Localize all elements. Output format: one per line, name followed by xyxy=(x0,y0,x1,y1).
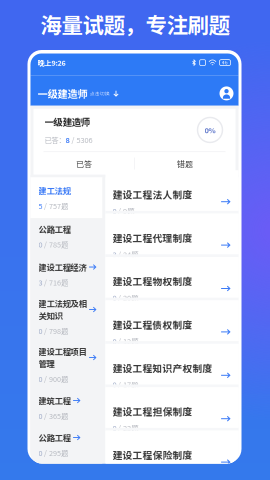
staticText: 0 xyxy=(38,326,42,336)
button[interactable]: 错题 xyxy=(135,152,235,175)
staticText: 建设工程债权制度 xyxy=(112,317,192,331)
staticText: 已答： xyxy=(44,134,65,145)
staticText: 建设工程代理制度 xyxy=(112,231,192,245)
button[interactable]: 建设工程项目 管理 xyxy=(30,339,102,390)
staticText: / 20题 xyxy=(118,292,138,303)
staticText: / 17题 xyxy=(118,379,138,390)
staticText: 建设工程担保制度 xyxy=(112,404,192,418)
staticText: 建设工程经济 xyxy=(38,261,86,273)
staticText: 46 xyxy=(222,59,228,66)
staticText: 3 xyxy=(38,277,42,287)
button[interactable]: 账户 xyxy=(219,86,233,100)
staticText: 0 xyxy=(112,379,116,390)
staticText: 公路工程 xyxy=(38,223,70,235)
staticText: 0 xyxy=(112,292,116,303)
staticText: 晚上9:26 xyxy=(37,57,65,68)
button[interactable]: 建设工程知识产权制度 xyxy=(105,344,238,384)
staticText: 海量试题，专注刷题 xyxy=(40,8,229,40)
staticText: / 23题 xyxy=(118,422,138,433)
staticText: 0 xyxy=(112,335,116,346)
button[interactable]: 建设工程代理制度 xyxy=(105,214,238,254)
button[interactable]: 建工法规及相 关知识 xyxy=(30,294,102,339)
button[interactable]: 建设工程法人制度 xyxy=(105,170,238,211)
staticText: 5 xyxy=(38,201,42,211)
staticText: 错题 xyxy=(177,158,193,169)
staticText: 0 xyxy=(38,411,42,421)
staticText: / 295题 xyxy=(44,448,68,458)
staticText: 0 xyxy=(112,205,116,216)
button[interactable]: 公路工程 xyxy=(30,425,102,464)
staticText: / 24题 xyxy=(118,249,138,259)
staticText: 0 xyxy=(38,374,42,384)
staticText: 建设工程知识产权制度 xyxy=(112,361,212,375)
staticText: / 5306 xyxy=(69,134,92,145)
staticText: 0 xyxy=(38,239,42,249)
button[interactable]: 建设工程保险制度 xyxy=(105,431,238,471)
staticText: 已答 xyxy=(76,158,92,169)
button[interactable]: 建设工程担保制度 xyxy=(105,387,238,428)
button[interactable]: 建工法规 xyxy=(30,177,102,218)
staticText: / 716题 xyxy=(44,277,68,287)
staticText: 3 xyxy=(112,249,116,259)
staticText: 建筑工程 xyxy=(38,394,70,407)
staticText: / 12题 xyxy=(118,335,138,346)
staticText: 0 xyxy=(112,422,116,433)
staticText: 一级建造师 xyxy=(37,86,87,101)
button[interactable]: 建设工程债权制度 xyxy=(105,300,238,341)
staticText: / 365题 xyxy=(44,411,68,421)
staticText: / 757题 xyxy=(44,201,68,211)
staticText: 点击切换 xyxy=(90,90,110,97)
staticText: 建设工程项目 管理 xyxy=(38,345,86,370)
staticText: 建设工程法人制度 xyxy=(112,187,192,201)
staticText: 建工法规及相 关知识 xyxy=(38,297,86,322)
staticText: 0 xyxy=(38,448,42,458)
staticText: 公路工程 xyxy=(38,431,70,444)
button[interactable]: 公路工程 xyxy=(30,218,102,254)
staticText: 建设工程保险制度 xyxy=(112,448,192,462)
staticText: / 785题 xyxy=(44,239,68,249)
staticText: 建工法规 xyxy=(38,184,70,197)
staticText: / 900题 xyxy=(44,374,68,384)
button[interactable]: 建设工程经济 xyxy=(30,254,102,294)
button[interactable]: 已答 xyxy=(34,152,134,175)
staticText: 8 xyxy=(65,134,69,145)
staticText: 一级建造师 xyxy=(44,115,89,128)
staticText: / 798题 xyxy=(44,326,68,336)
button[interactable]: 建设工程物权制度 xyxy=(105,257,238,298)
button[interactable]: 建筑工程 xyxy=(30,390,102,425)
staticText: 建设工程物权制度 xyxy=(112,274,192,288)
button[interactable]: 一级建造师 xyxy=(37,86,119,101)
staticText: / 9题 xyxy=(118,205,134,216)
staticText: 0% xyxy=(204,124,215,135)
